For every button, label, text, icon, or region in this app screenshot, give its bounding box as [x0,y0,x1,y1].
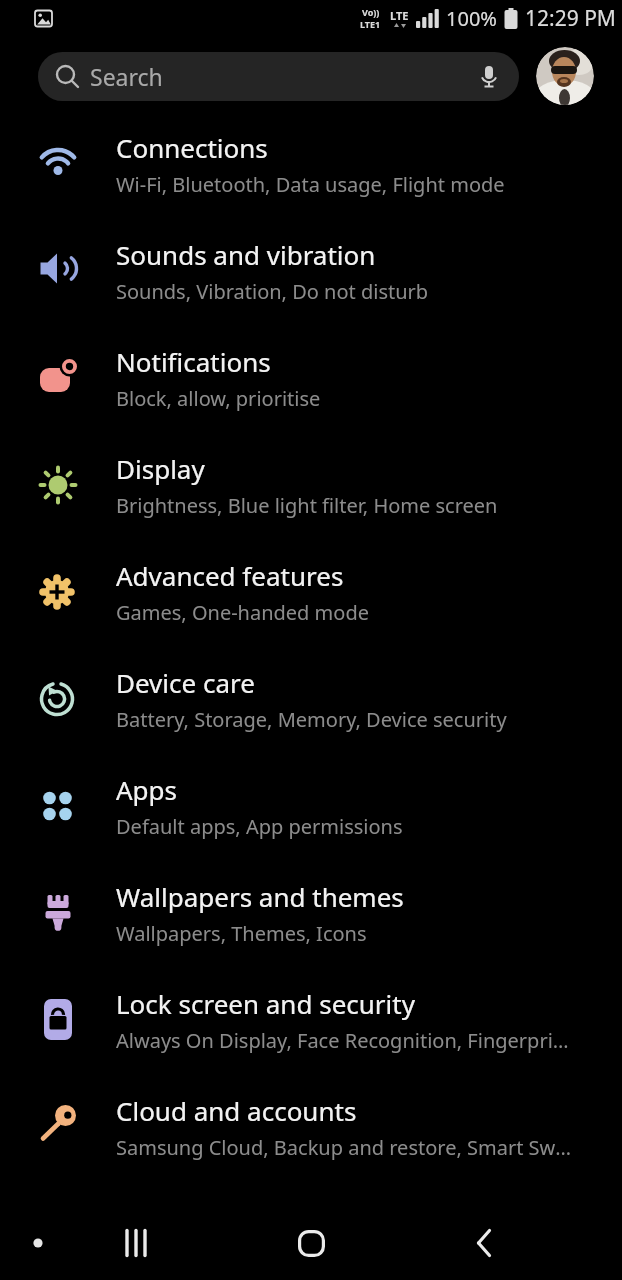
staticText: Lock screen and security [116,986,415,1021]
button[interactable] [26,1231,50,1255]
button[interactable]: Wallpapers and themes [0,859,622,966]
staticText: Always On Display, Face Recognition, Fin… [116,1027,574,1054]
staticText: Block, allow, prioritise [116,385,321,412]
staticText: Display [116,451,205,486]
staticText: Wallpapers and themes [116,879,404,914]
staticText: Default apps, App permissions [116,813,403,840]
staticText: Samsung Cloud, Backup and restore, Smart… [116,1134,574,1161]
button[interactable]: Connections [0,110,622,217]
staticText: Cloud and accounts [116,1093,357,1128]
button[interactable]: Search [38,52,519,101]
button[interactable]: Advanced features [0,538,622,645]
staticText: Wallpapers, Themes, Icons [116,920,367,947]
button[interactable]: Lock screen and security [0,966,622,1073]
button[interactable]: Display [0,431,622,538]
staticText: Vo)) [362,6,380,18]
staticText: 100% [446,5,497,32]
staticText: Device care [116,665,255,700]
button[interactable] [454,1213,514,1273]
staticText: Notifications [116,344,271,379]
staticText: Sounds, Vibration, Do not disturb [116,278,429,305]
staticText: Connections [116,130,268,165]
button[interactable] [107,1213,167,1273]
button[interactable] [281,1213,341,1273]
button[interactable]: Device care [0,645,622,752]
staticText: LTE1 [360,18,381,30]
staticText: Search [90,61,163,92]
button[interactable]: Apps [0,752,622,859]
button[interactable]: Sounds and vibration [0,217,622,324]
staticText: Advanced features [116,558,344,593]
button[interactable] [536,47,594,105]
button[interactable]: Notifications [0,324,622,431]
staticText: 12:29 PM [525,4,616,33]
staticText: Battery, Storage, Memory, Device securit… [116,706,507,733]
staticText: Games, One-handed mode [116,599,369,626]
staticText: Brightness, Blue light filter, Home scre… [116,492,498,519]
button[interactable]: Cloud and accounts [0,1073,622,1180]
staticText: Sounds and vibration [116,237,376,272]
staticText: Wi-Fi, Bluetooth, Data usage, Flight mod… [116,171,505,198]
staticText: Apps [116,772,178,807]
staticText: LTE [390,8,409,23]
